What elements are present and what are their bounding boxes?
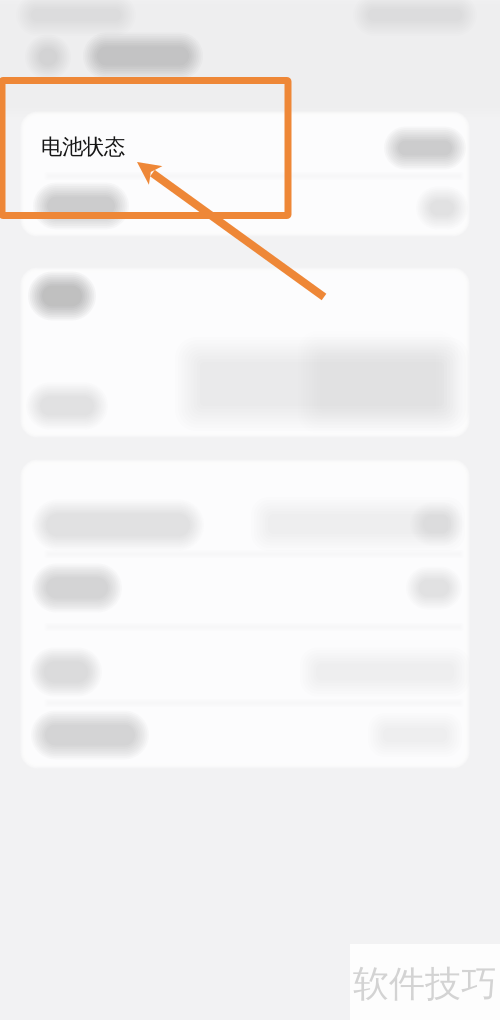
staticText: 电池状态 — [41, 134, 125, 160]
staticText: 软件技巧 — [353, 962, 497, 1006]
